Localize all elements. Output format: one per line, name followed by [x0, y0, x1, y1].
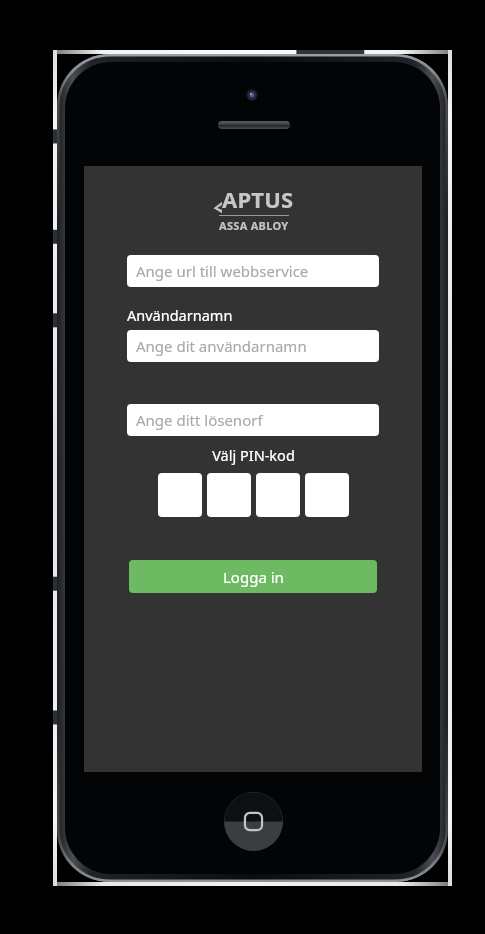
button[interactable]: Ange url till webbservice	[127, 255, 379, 287]
staticText: Logga in	[223, 567, 284, 587]
staticText: Ange dit användarnamn	[136, 336, 307, 356]
staticText: Användarnamn	[127, 305, 233, 325]
button[interactable]: PIN digit 2	[207, 473, 251, 517]
button[interactable]: PIN digit 3	[256, 473, 300, 517]
button[interactable]: PIN digit 1	[158, 473, 202, 517]
staticText: Ange url till webbservice	[136, 261, 309, 281]
staticText: APTUS	[222, 184, 294, 214]
button[interactable]: Ange dit användarnamn	[127, 330, 379, 362]
button[interactable]: Logga in	[129, 560, 377, 593]
button[interactable]: PIN digit 4	[305, 473, 349, 517]
staticText: ASSA ABLOY	[219, 218, 289, 233]
staticText: Ange ditt lösenorf	[136, 410, 263, 430]
button[interactable]: Ange ditt lösenorf	[127, 404, 379, 436]
button[interactable]: Home	[224, 792, 283, 851]
staticText: Välj PIN-kod	[212, 445, 295, 465]
